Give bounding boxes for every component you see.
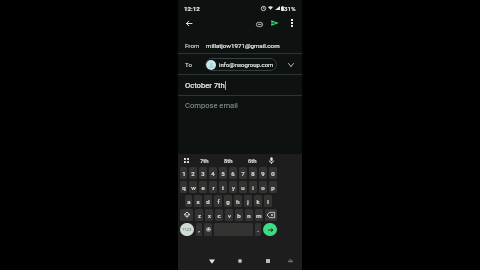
staticText: m xyxy=(256,212,262,219)
button[interactable]: z xyxy=(195,209,203,221)
button[interactable]: n xyxy=(245,209,253,221)
button[interactable]: Backspace xyxy=(265,209,277,221)
button[interactable]: Home xyxy=(233,254,247,268)
button[interactable]: l xyxy=(264,195,272,207)
staticText: u xyxy=(241,184,245,191)
button[interactable]: Expand recipients xyxy=(284,58,298,72)
staticText: 6th xyxy=(248,157,257,164)
button[interactable]: Toolbar xyxy=(179,154,193,167)
button[interactable]: . xyxy=(255,223,261,236)
staticText: t xyxy=(222,184,224,191)
button[interactable]: 6 xyxy=(229,167,237,179)
button[interactable]: c xyxy=(215,209,223,221)
button[interactable]: f xyxy=(214,195,222,207)
staticText: ?123 xyxy=(182,227,192,232)
button[interactable]: Send xyxy=(268,16,282,30)
button[interactable]: info@nsogroup.com xyxy=(205,58,277,71)
staticText: , xyxy=(198,226,200,233)
button[interactable]: More options xyxy=(285,16,299,30)
staticText: v xyxy=(228,212,231,219)
staticText: w xyxy=(191,184,196,191)
staticText: 3 xyxy=(201,170,205,177)
button[interactable]: d xyxy=(204,195,212,207)
button[interactable]: x xyxy=(205,209,213,221)
button[interactable]: 7th xyxy=(193,154,216,167)
staticText: 31% xyxy=(284,5,296,12)
button[interactable]: j xyxy=(244,195,252,207)
staticText: k xyxy=(256,198,260,205)
staticText: i xyxy=(252,184,254,191)
staticText: c xyxy=(217,212,221,219)
button[interactable]: 3 xyxy=(199,167,207,179)
button[interactable]: 6th xyxy=(240,154,264,167)
button[interactable]: Voice input xyxy=(264,154,278,167)
button[interactable]: 8 xyxy=(249,167,257,179)
button[interactable]: 8th xyxy=(216,154,240,167)
button[interactable]: Recents xyxy=(261,254,275,268)
button[interactable]: k xyxy=(254,195,262,207)
button[interactable]: 4 xyxy=(209,167,217,179)
staticText: Compose email xyxy=(185,101,238,110)
button[interactable]: 7 xyxy=(239,167,247,179)
button[interactable]: w xyxy=(189,181,197,193)
staticText: a xyxy=(187,198,191,205)
button[interactable]: v xyxy=(225,209,233,221)
staticText: r xyxy=(212,184,215,191)
staticText: millatjow1971@gmail.com xyxy=(206,42,280,49)
staticText: 8 xyxy=(251,170,255,177)
staticText: 2 xyxy=(191,170,195,177)
button[interactable]: e xyxy=(199,181,207,193)
button[interactable]: Shift xyxy=(180,209,193,221)
staticText: 12:12 xyxy=(184,5,200,12)
button[interactable]: b xyxy=(235,209,243,221)
button[interactable]: o xyxy=(259,181,267,193)
button[interactable]: m xyxy=(255,209,263,221)
staticText: h xyxy=(236,198,240,205)
button[interactable]: 0 xyxy=(269,167,277,179)
staticText: j xyxy=(247,198,249,205)
staticText: 6 xyxy=(231,170,235,177)
staticText: 4 xyxy=(211,170,215,177)
button[interactable]: Attach file xyxy=(252,17,266,31)
button[interactable]: t xyxy=(219,181,227,193)
button[interactable]: s xyxy=(194,195,202,207)
staticText: s xyxy=(196,198,200,205)
staticText: info@nsogroup.com xyxy=(219,61,274,68)
staticText: l xyxy=(267,198,269,205)
button[interactable]: ?123 xyxy=(180,223,194,236)
staticText: To xyxy=(185,61,192,68)
button[interactable]: i xyxy=(249,181,257,193)
staticText: 7th xyxy=(200,157,209,164)
button[interactable]: u xyxy=(239,181,247,193)
staticText: y xyxy=(232,184,235,191)
button[interactable]: h xyxy=(234,195,242,207)
button[interactable]: Back xyxy=(182,16,196,30)
staticText: x xyxy=(208,212,211,219)
button[interactable]: a xyxy=(185,195,192,207)
staticText: b xyxy=(237,212,241,219)
button[interactable]: q xyxy=(180,181,187,193)
button[interactable]: Back xyxy=(205,254,219,268)
button[interactable]: r xyxy=(209,181,217,193)
staticText: d xyxy=(206,198,210,205)
staticText: 7 xyxy=(241,170,245,177)
staticText: q xyxy=(182,184,186,191)
button[interactable]: g xyxy=(224,195,232,207)
staticText: 1 xyxy=(182,170,186,177)
button[interactable]: Switch keyboard xyxy=(283,254,297,268)
button[interactable]: y xyxy=(229,181,237,193)
staticText: n xyxy=(247,212,251,219)
button[interactable]: 2 xyxy=(189,167,197,179)
button[interactable]: , xyxy=(196,223,202,236)
staticText: e xyxy=(201,184,205,191)
button[interactable]: 1 xyxy=(180,167,187,179)
button[interactable]: p xyxy=(269,181,277,193)
staticText: . xyxy=(257,226,259,233)
staticText: 0 xyxy=(271,170,275,177)
button[interactable]: 5 xyxy=(219,167,227,179)
button[interactable]: 9 xyxy=(259,167,267,179)
staticText: October 7th xyxy=(185,81,225,90)
button[interactable]: Enter xyxy=(263,223,277,236)
button[interactable]: Emoji xyxy=(204,223,212,236)
